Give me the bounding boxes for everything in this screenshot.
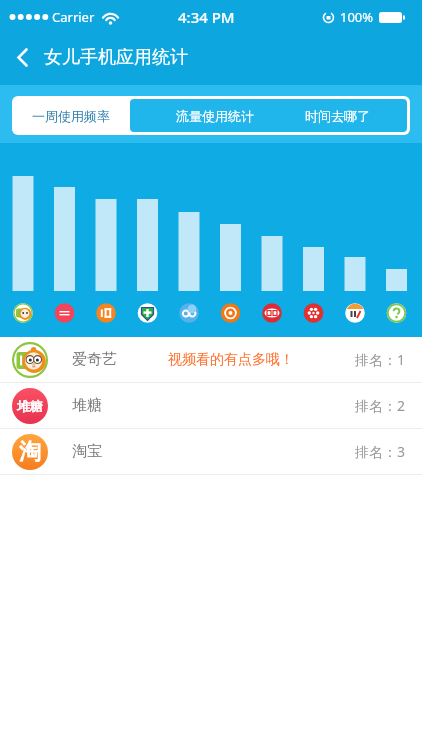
staticText: 排名：1	[355, 350, 406, 369]
staticText: 爱奇艺	[72, 350, 117, 369]
button[interactable]: 一周使用频率	[15, 99, 127, 132]
staticText: 4:34 PM	[178, 7, 235, 27]
staticText: 女儿手机应用统计	[44, 46, 188, 69]
staticText: 淘	[19, 438, 41, 466]
staticText: 视频看的有点多哦！	[168, 351, 294, 369]
button[interactable]: 爱奇艺	[0, 337, 422, 383]
staticText: 时间去哪了	[305, 108, 370, 124]
staticText: 堆糖	[72, 396, 102, 415]
button[interactable]: 时间去哪了	[268, 99, 407, 132]
staticText: 排名：2	[355, 396, 406, 415]
button[interactable]: 流量使用统计	[130, 99, 268, 132]
button[interactable]: 淘	[0, 429, 422, 475]
button[interactable]: 堆糖	[0, 383, 422, 429]
staticText: 淘宝	[72, 442, 102, 461]
staticText: 100%	[340, 8, 374, 26]
button[interactable]	[0, 30, 44, 85]
staticText: 一周使用频率	[32, 108, 110, 124]
staticText: Carrier	[52, 8, 95, 26]
staticText: 流量使用统计	[176, 108, 254, 124]
staticText: 排名：3	[355, 442, 406, 461]
staticText: 堆糖	[17, 398, 43, 414]
